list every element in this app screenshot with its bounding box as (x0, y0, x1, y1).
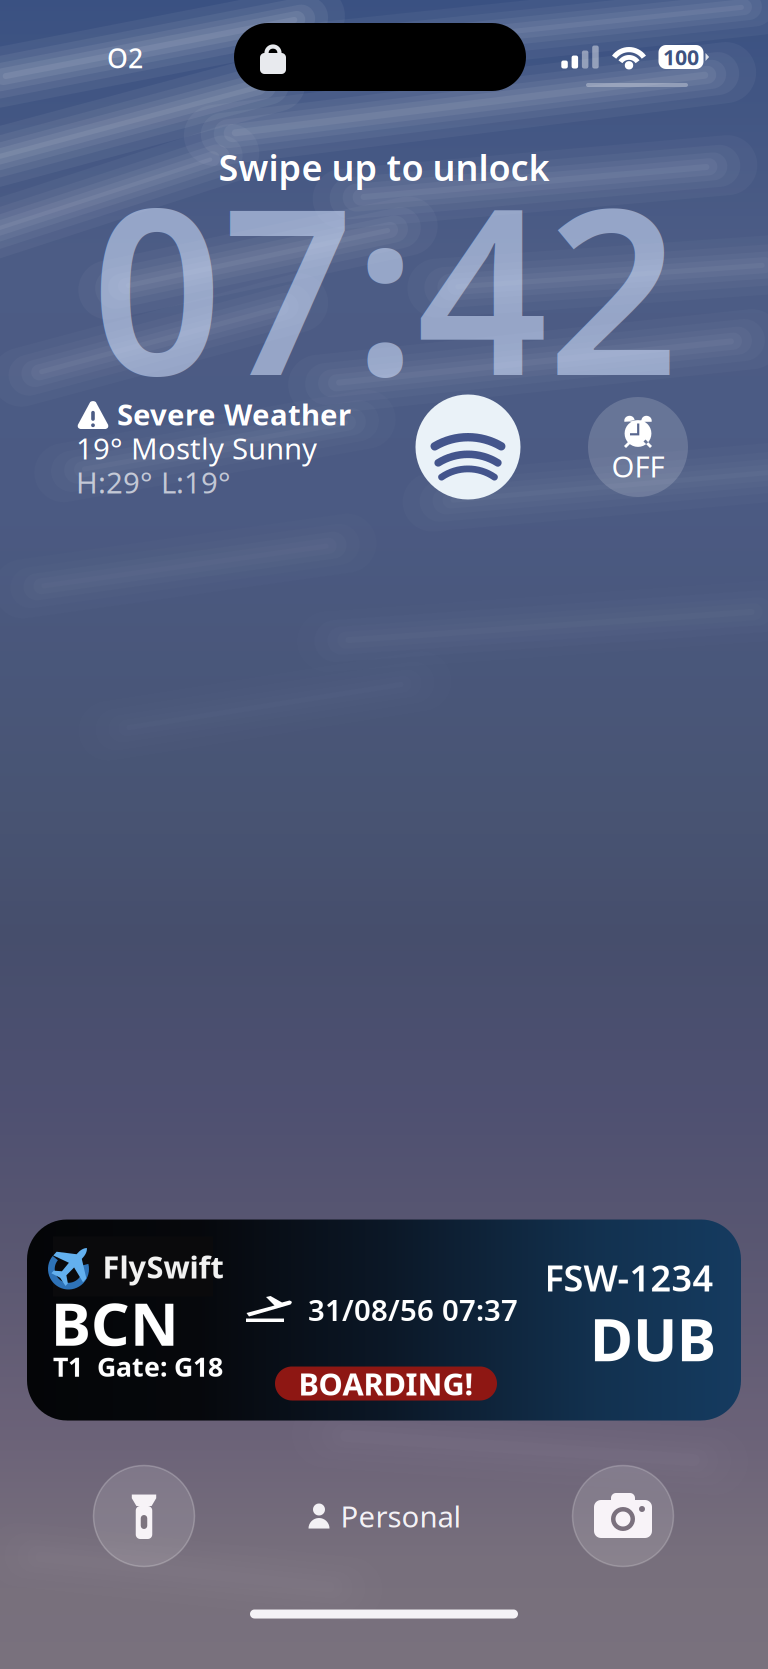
staticText: 07:42 (91, 134, 678, 438)
staticText: DUB (590, 1299, 716, 1377)
staticText: Personal (340, 1496, 461, 1535)
staticText: OFF (611, 446, 664, 485)
button[interactable]: Flashlight (93, 1465, 194, 1566)
staticText: 19° Mostly Sunny (76, 428, 317, 467)
staticText: BOARDING! (298, 1363, 473, 1404)
button[interactable]: Camera (572, 1465, 673, 1566)
staticText: O2 (107, 40, 143, 76)
staticText: BCN (51, 1283, 179, 1362)
button[interactable]: Alarm off (588, 397, 688, 497)
staticText: 31/08/56 07:37 (308, 1290, 518, 1329)
staticText: FlySwift (102, 1246, 223, 1287)
staticText: Swipe up to unlock (218, 143, 549, 191)
button[interactable]: Spotify (415, 394, 520, 499)
staticText: H:29° L:19° (76, 462, 231, 501)
button[interactable]: FlySwift boarding pass, BCN to DUB, boar… (27, 1219, 741, 1420)
staticText: T1 Gate: G18 (53, 1349, 223, 1384)
staticText: FSW-1234 (544, 1254, 713, 1301)
staticText: 100 (663, 43, 699, 71)
staticText: Severe Weather (117, 394, 351, 433)
